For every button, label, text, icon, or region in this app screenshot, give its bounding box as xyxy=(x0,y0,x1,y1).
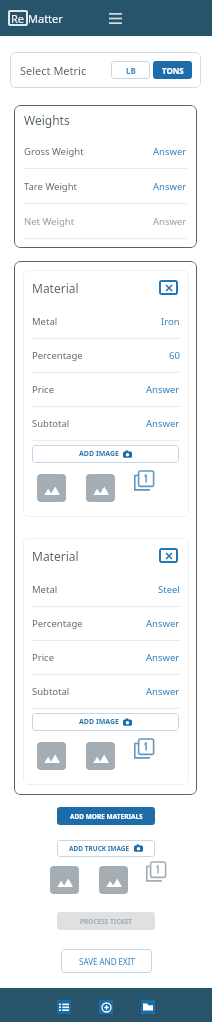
button[interactable]: Price xyxy=(23,373,189,407)
staticText: PROCESS TICKET xyxy=(80,917,133,926)
button[interactable]: Photo xyxy=(99,866,128,894)
staticText: Percentage xyxy=(32,349,83,362)
button[interactable]: Tickets xyxy=(57,1000,71,1014)
button[interactable]: TONS xyxy=(153,61,192,79)
staticText: Answer xyxy=(146,651,180,664)
staticText: Percentage xyxy=(32,617,83,630)
button[interactable]: Photo xyxy=(37,474,66,502)
button[interactable]: ADD IMAGE xyxy=(32,713,179,731)
button[interactable]: Photo xyxy=(86,742,115,770)
staticText: Price xyxy=(32,383,55,396)
button[interactable]: Menu xyxy=(104,7,126,29)
button[interactable]: Gross Weight xyxy=(14,134,197,169)
button[interactable]: Subtotal xyxy=(23,407,189,441)
staticText: Material xyxy=(32,280,79,296)
button[interactable]: ADD IMAGE xyxy=(32,445,179,463)
button[interactable]: Files xyxy=(141,1000,155,1014)
button[interactable]: Remove material xyxy=(159,280,178,295)
button[interactable]: Image count 1 xyxy=(134,470,155,491)
button[interactable]: Tare Weight xyxy=(14,169,197,204)
button[interactable]: SAVE AND EXIT xyxy=(61,949,152,973)
button[interactable]: ADD TRUCK IMAGE xyxy=(57,840,155,857)
staticText: ADD TRUCK IMAGE xyxy=(69,844,130,853)
staticText: Answer xyxy=(153,145,187,158)
staticText: Answer xyxy=(146,383,180,396)
staticText: Net Weight xyxy=(24,215,75,228)
staticText: Select Metric xyxy=(20,63,87,78)
staticText: Answer xyxy=(146,617,180,630)
staticText: Gross Weight xyxy=(24,145,84,158)
staticText: Metal xyxy=(32,583,58,596)
button[interactable]: Add xyxy=(99,1000,113,1014)
staticText: ADD MORE MATERIALS xyxy=(70,812,143,821)
button[interactable]: Net Weight xyxy=(14,204,197,239)
staticText: Material xyxy=(32,548,79,564)
button[interactable]: Photo xyxy=(50,866,79,894)
button[interactable]: ADD MORE MATERIALS xyxy=(57,807,155,825)
staticText: Price xyxy=(32,651,55,664)
staticText: Steel xyxy=(158,583,180,596)
staticText: Metal xyxy=(32,315,58,328)
button[interactable]: Image count 1 xyxy=(146,861,167,882)
button[interactable]: Percentage xyxy=(23,339,189,373)
button[interactable]: Percentage xyxy=(23,607,189,641)
staticText: Re xyxy=(11,11,25,26)
button[interactable]: Price xyxy=(23,641,189,675)
button[interactable]: Metal xyxy=(23,305,189,339)
staticText: ADD IMAGE xyxy=(79,717,119,727)
staticText: LB xyxy=(126,65,136,76)
staticText: Answer xyxy=(146,685,180,698)
button[interactable]: Photo xyxy=(37,742,66,770)
staticText: SAVE AND EXIT xyxy=(79,956,135,967)
staticText: Subtotal xyxy=(32,417,70,430)
staticText: 60 xyxy=(169,349,180,362)
staticText: Weights xyxy=(24,112,70,128)
button[interactable]: Image count 1 xyxy=(134,738,155,759)
button[interactable]: Photo xyxy=(86,474,115,502)
button[interactable]: LB xyxy=(111,61,150,79)
staticText: Answer xyxy=(153,180,187,193)
staticText: Tare Weight xyxy=(24,180,78,193)
staticText: ADD IMAGE xyxy=(79,449,119,459)
staticText: Matter xyxy=(28,11,63,26)
button[interactable]: Remove material xyxy=(159,548,178,563)
staticText: Subtotal xyxy=(32,685,70,698)
staticText: Answer xyxy=(153,215,187,228)
staticText: Iron xyxy=(161,315,180,328)
staticText: Answer xyxy=(146,417,180,430)
button[interactable]: PROCESS TICKET xyxy=(57,912,155,930)
staticText: TONS xyxy=(162,65,184,76)
button[interactable]: Metal xyxy=(23,573,189,607)
button[interactable]: Subtotal xyxy=(23,675,189,709)
